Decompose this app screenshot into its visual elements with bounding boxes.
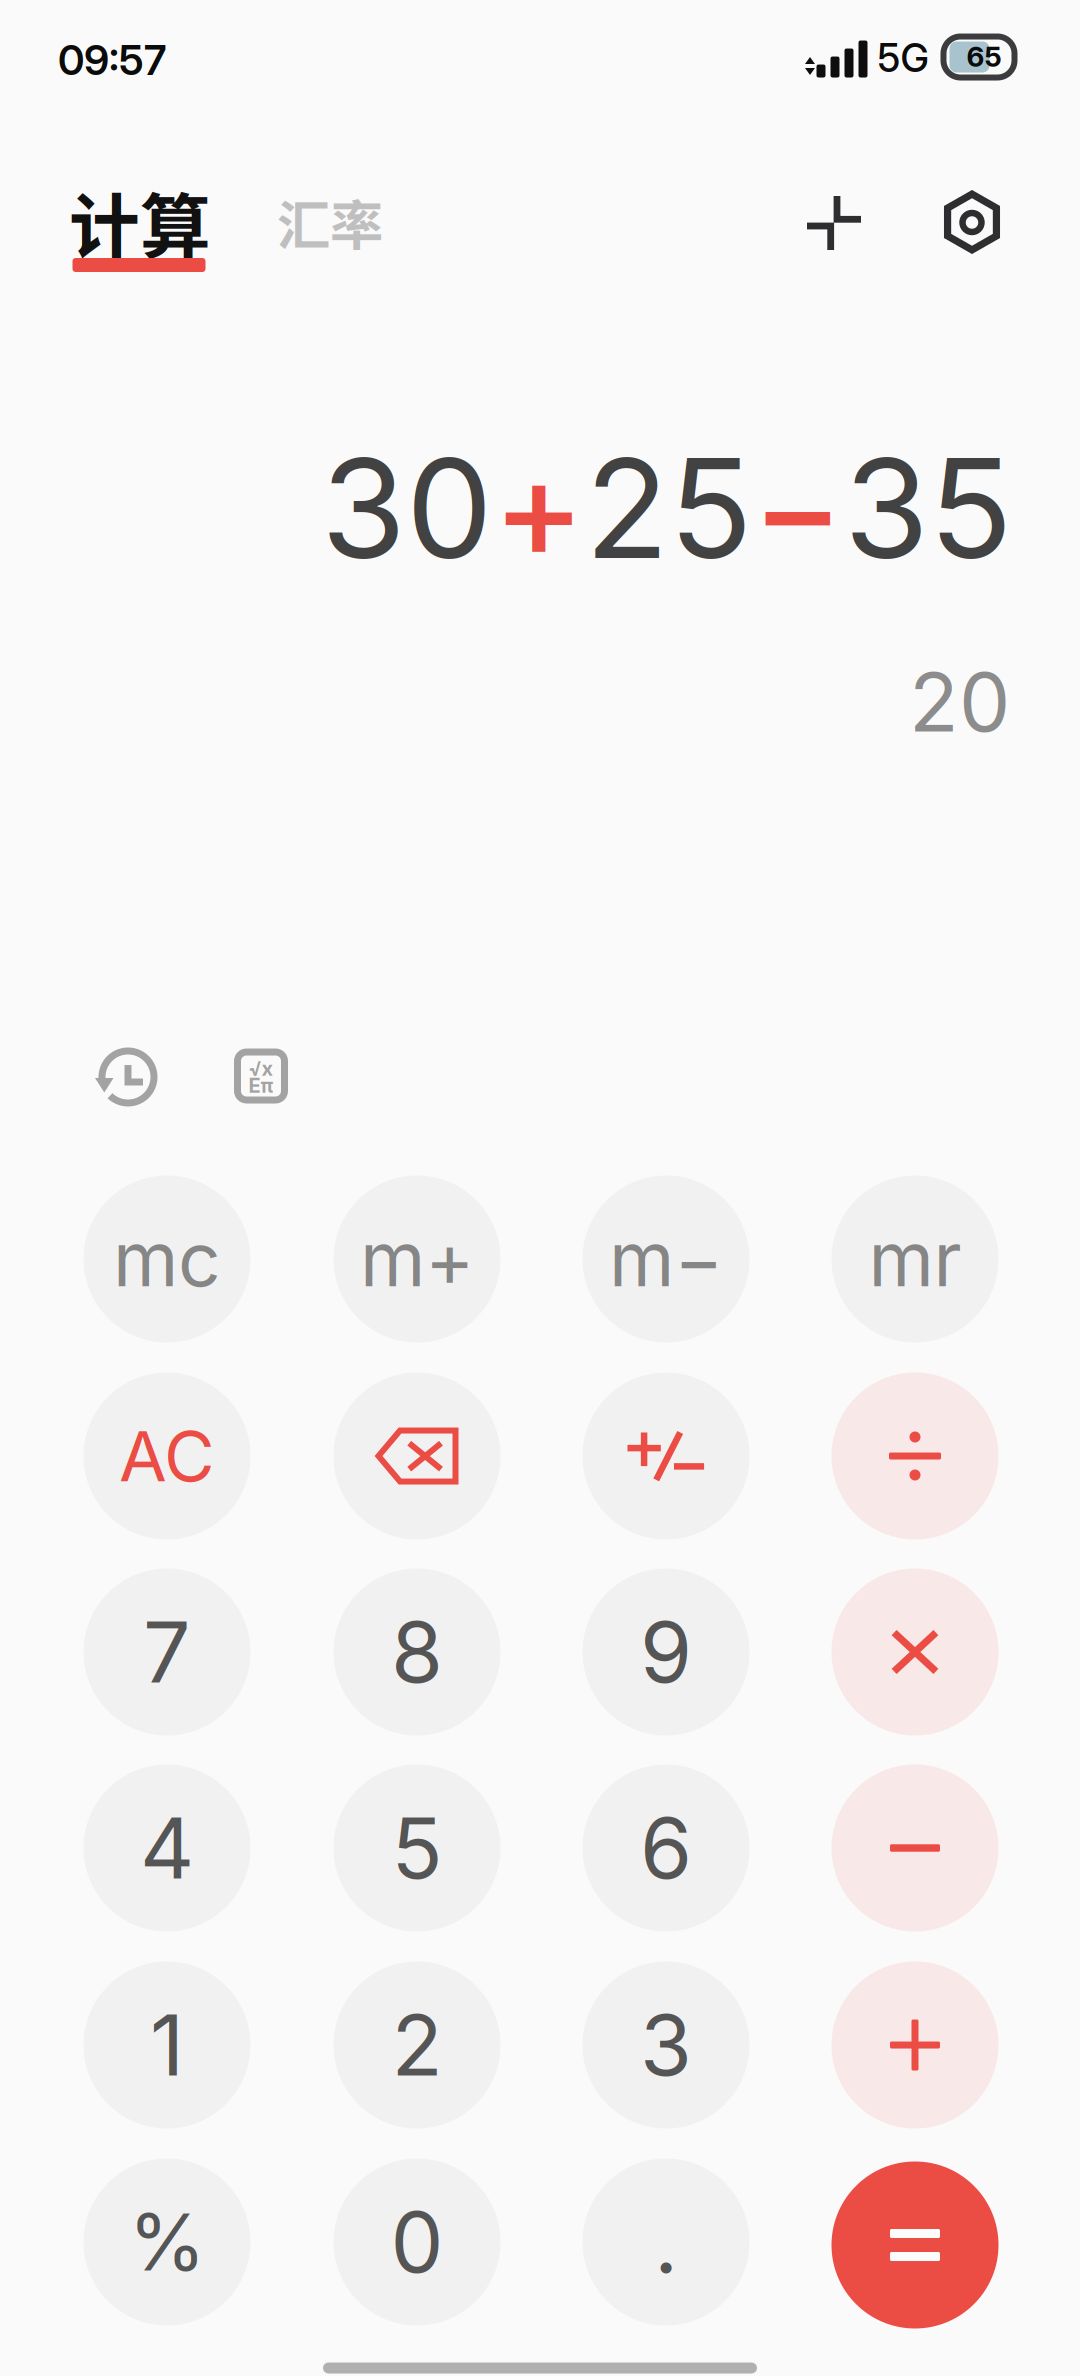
button[interactable]: 计算	[68, 160, 228, 280]
button[interactable]: .	[582, 2158, 749, 2325]
staticText: Eπ	[248, 1073, 273, 1098]
button[interactable]: m+	[333, 1175, 500, 1342]
button[interactable]: 6	[582, 1764, 749, 1931]
button[interactable]: 5	[333, 1764, 500, 1931]
button[interactable]: Divide	[831, 1372, 998, 1539]
button[interactable]: 3	[582, 1961, 749, 2128]
staticText: 20	[909, 653, 1010, 751]
button[interactable]: 0	[333, 2158, 500, 2325]
button[interactable]: m−	[582, 1175, 749, 1342]
staticText: 65	[966, 40, 1001, 73]
staticText: +	[493, 425, 585, 591]
staticText: 汇率	[277, 183, 383, 261]
button[interactable]: 9	[582, 1568, 749, 1735]
staticText: 2	[391, 1994, 442, 2096]
button[interactable]: mc	[83, 1175, 250, 1342]
staticText: 8	[391, 1601, 443, 1703]
staticText: 5	[391, 1797, 442, 1899]
staticText: −	[752, 425, 844, 591]
staticText: .	[654, 2191, 678, 2293]
button[interactable]: Scientific	[232, 1047, 290, 1105]
staticText: 3	[640, 1994, 692, 2096]
button[interactable]: Plus	[831, 1961, 998, 2128]
button[interactable]: Plus minus	[582, 1372, 749, 1539]
button[interactable]: Settings	[940, 190, 1003, 253]
staticText: 计算	[69, 171, 211, 273]
staticText: 35	[844, 425, 1012, 591]
button[interactable]: 2	[333, 1961, 500, 2128]
button[interactable]: History	[98, 1047, 158, 1107]
staticText: 7	[143, 1601, 191, 1703]
button[interactable]: Resize	[807, 196, 861, 250]
staticText: 6	[640, 1797, 692, 1899]
staticText: m−	[609, 1214, 723, 1304]
staticText: AC	[119, 1414, 215, 1498]
button[interactable]: 汇率	[260, 182, 400, 262]
staticText: m+	[360, 1214, 474, 1304]
staticText: mc	[113, 1214, 221, 1304]
button[interactable]: mr	[831, 1175, 998, 1342]
button[interactable]: AC	[83, 1372, 250, 1539]
staticText: 5G	[877, 35, 928, 81]
button[interactable]: Equals	[831, 2161, 998, 2328]
button[interactable]: Multiply	[831, 1568, 998, 1735]
staticText: 9	[640, 1601, 692, 1703]
staticText: mr	[868, 1214, 961, 1304]
button[interactable]: 1	[83, 1961, 250, 2128]
button[interactable]: Minus	[831, 1764, 998, 1931]
staticText: 0	[390, 2191, 443, 2293]
button[interactable]: %	[83, 2158, 250, 2325]
button[interactable]: Backspace	[333, 1372, 500, 1539]
staticText: %	[128, 2194, 205, 2290]
staticText: 1	[150, 1994, 184, 2096]
staticText: √x	[248, 1056, 273, 1081]
staticText: 09:57	[58, 35, 166, 85]
staticText: 30	[321, 425, 493, 591]
staticText: 4	[140, 1797, 194, 1899]
button[interactable]: 4	[83, 1764, 250, 1931]
button[interactable]: 7	[83, 1568, 250, 1735]
button[interactable]: 8	[333, 1568, 500, 1735]
staticText: 25	[585, 425, 752, 591]
